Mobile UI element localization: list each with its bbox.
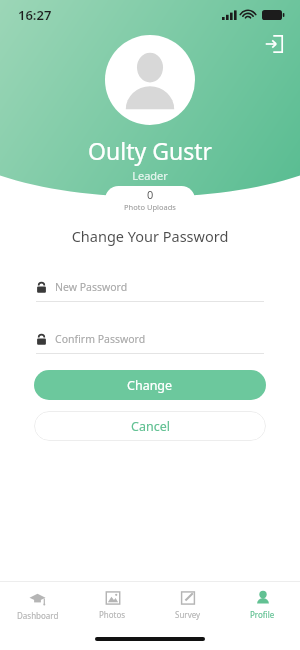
staticText: Oulty Gustr bbox=[88, 135, 212, 166]
staticText: Survey bbox=[175, 609, 201, 620]
button[interactable]: Change bbox=[34, 370, 266, 400]
staticText: 0 bbox=[147, 187, 154, 202]
button[interactable]: 0 bbox=[105, 186, 195, 213]
button[interactable]: Cancel bbox=[34, 411, 266, 441]
staticText: Change bbox=[127, 377, 173, 394]
button[interactable]: Photos bbox=[75, 582, 150, 628]
button[interactable]: Dashboard bbox=[0, 582, 75, 628]
staticText: Photo Uploads bbox=[124, 202, 176, 212]
staticText: Profile bbox=[250, 609, 275, 620]
staticText: Confirm Password bbox=[55, 332, 146, 346]
staticText: Cancel bbox=[131, 418, 170, 435]
button[interactable]: Log out bbox=[260, 30, 288, 58]
button[interactable]: Survey bbox=[150, 582, 225, 628]
staticText: Photos bbox=[99, 609, 126, 620]
staticText: Change Your Password bbox=[0, 226, 300, 246]
staticText: Leader bbox=[132, 168, 168, 183]
staticText: Dashboard bbox=[17, 610, 59, 621]
staticText: 16:27 bbox=[18, 6, 52, 24]
staticText: New Password bbox=[55, 280, 128, 294]
button[interactable]: Profile bbox=[225, 582, 300, 628]
